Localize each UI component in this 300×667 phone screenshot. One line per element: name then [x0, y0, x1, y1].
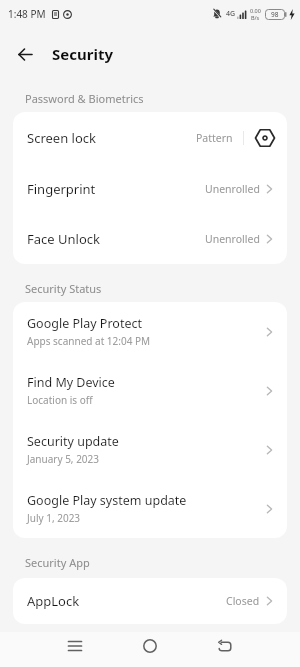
- staticText: Location is off: [27, 393, 93, 407]
- staticText: Pattern: [196, 131, 233, 145]
- staticText: AppLock: [27, 592, 80, 610]
- staticText: Security update: [27, 433, 119, 450]
- staticText: Closed: [226, 594, 260, 608]
- staticText: Screen lock: [27, 129, 96, 147]
- staticText: Fingerprint: [27, 180, 96, 198]
- staticText: Face Unlock: [27, 230, 100, 248]
- staticText: January 5, 2023: [27, 452, 100, 466]
- staticText: July 1, 2023: [27, 511, 81, 525]
- staticText: B/s: [251, 14, 260, 21]
- staticText: Security: [52, 44, 113, 64]
- staticText: Find My Device: [27, 374, 115, 391]
- staticText: 98: [271, 10, 279, 19]
- staticText: 0.00: [250, 7, 261, 14]
- staticText: 4G: [226, 9, 236, 19]
- staticText: Unenrolled: [205, 232, 260, 246]
- staticText: 1:48 PM: [8, 7, 46, 21]
- staticText: Unenrolled: [205, 182, 260, 196]
- staticText: Password & Biometrics: [25, 91, 144, 106]
- staticText: Security Status: [25, 281, 102, 296]
- staticText: Google Play Protect: [27, 315, 142, 332]
- staticText: Security App: [25, 555, 90, 570]
- staticText: Apps scanned at 12:04 PM: [27, 334, 151, 348]
- staticText: Google Play system update: [27, 492, 187, 509]
